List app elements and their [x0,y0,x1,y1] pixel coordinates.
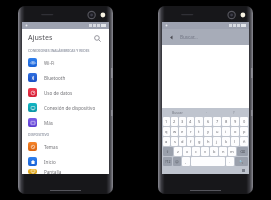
button[interactable]: n [219,147,227,156]
staticText: k [225,139,228,144]
staticText: e [181,129,184,134]
button[interactable]: k [222,137,230,146]
staticText: CONEXIONES INALÁMBRICAS Y REDES [28,48,90,53]
button[interactable]: ☺ [173,157,181,166]
staticText: o [234,129,237,134]
button[interactable]: q [163,127,170,136]
staticText: Inicio [44,159,56,165]
staticText: j [216,139,218,144]
button[interactable]: Pantalla [22,169,109,174]
staticText: Más [44,120,53,126]
staticText: 3 [181,119,184,124]
staticText: Buscar [172,110,183,115]
staticText: g [198,139,201,144]
button[interactable]: e [179,127,186,136]
button[interactable]: c [192,147,200,156]
button[interactable]: 🔍 [235,157,248,166]
button[interactable]: l [231,137,239,146]
staticText: ñ [243,139,246,144]
button[interactable]: t [195,127,203,136]
staticText: r [190,129,192,134]
staticText: w [173,129,177,134]
staticText: 8 [225,119,228,124]
button[interactable]: 8 [222,117,230,126]
staticText: x [186,149,189,154]
button[interactable]: Más [22,115,109,130]
button[interactable]: w [171,127,178,136]
staticText: ☺ [175,160,179,164]
button[interactable]: x [183,147,191,156]
button[interactable]: Buscar [163,109,192,116]
staticText: h [207,139,210,144]
staticText: Wi-Fi [44,60,55,66]
button[interactable]: z [174,147,182,156]
button[interactable]: 6 [204,117,212,126]
staticText: 2 [173,119,176,124]
staticText: Uso de datos [44,90,73,96]
staticText: y [207,129,210,134]
button[interactable]: y [204,127,212,136]
staticText: · [206,110,207,115]
button[interactable]: h [204,137,212,146]
staticText: b [213,149,216,154]
button[interactable]: ⇧ [163,147,173,156]
button[interactable]: 4 [187,117,194,126]
button[interactable]: m [228,147,236,156]
button[interactable]: v [201,147,209,156]
staticText: i [225,129,227,134]
button[interactable]: f [187,137,194,146]
button[interactable]: Bluetooth [22,70,109,85]
button[interactable]: j [213,137,221,146]
button[interactable]: Ajustes [22,29,109,46]
staticText: Buscar... [180,34,198,40]
staticText: f [190,139,192,144]
button[interactable]: 7 [213,117,221,126]
button[interactable]: Wi-Fi [22,55,109,70]
staticText: ? [233,110,235,115]
button[interactable]: u [213,127,221,136]
staticText: . [229,159,231,164]
button[interactable]: ?12 [163,157,172,166]
button[interactable]: 0 [240,117,248,126]
button[interactable]: 1 [163,117,170,126]
button[interactable]: b [210,147,218,156]
button[interactable]: 9 [231,117,239,126]
staticText: p [243,129,246,134]
button[interactable]: Buscar [91,32,103,44]
button[interactable]: i [222,127,230,136]
button[interactable]: 5 [195,117,203,126]
button[interactable]: 2 [171,117,178,126]
staticText: Pantalla [44,169,62,174]
staticText: t [198,129,200,134]
staticText: s [174,139,176,144]
staticText: 7 [216,119,219,124]
button[interactable]: s [171,137,178,146]
staticText: 9 [234,119,237,124]
button[interactable]: 3 [179,117,186,126]
button[interactable]: Uso de datos [22,85,109,100]
staticText: ⇧ [166,150,170,154]
button[interactable]: , [182,157,190,166]
button[interactable]: p [240,127,248,136]
button[interactable]: Atrás [167,33,176,42]
button[interactable]: Temas [22,139,109,154]
button[interactable]: ⌫ [237,147,248,156]
staticText: 4 [189,119,192,124]
button[interactable]: o [231,127,239,136]
button[interactable]: Inicio [22,154,109,169]
button[interactable]: a [163,137,170,146]
button[interactable]: Conexión de dispositivo [22,100,109,115]
button[interactable]: . [226,157,234,166]
button[interactable]: Atrás [162,29,249,45]
button[interactable]: d [179,137,186,146]
staticText: d [181,139,184,144]
button[interactable]: r [187,127,194,136]
staticText: 🔍 [239,160,244,164]
staticText: 0 [243,119,246,124]
button[interactable]: ñ [240,137,248,146]
staticText: DISPOSITIVO [28,132,50,137]
button[interactable]: g [195,137,203,146]
